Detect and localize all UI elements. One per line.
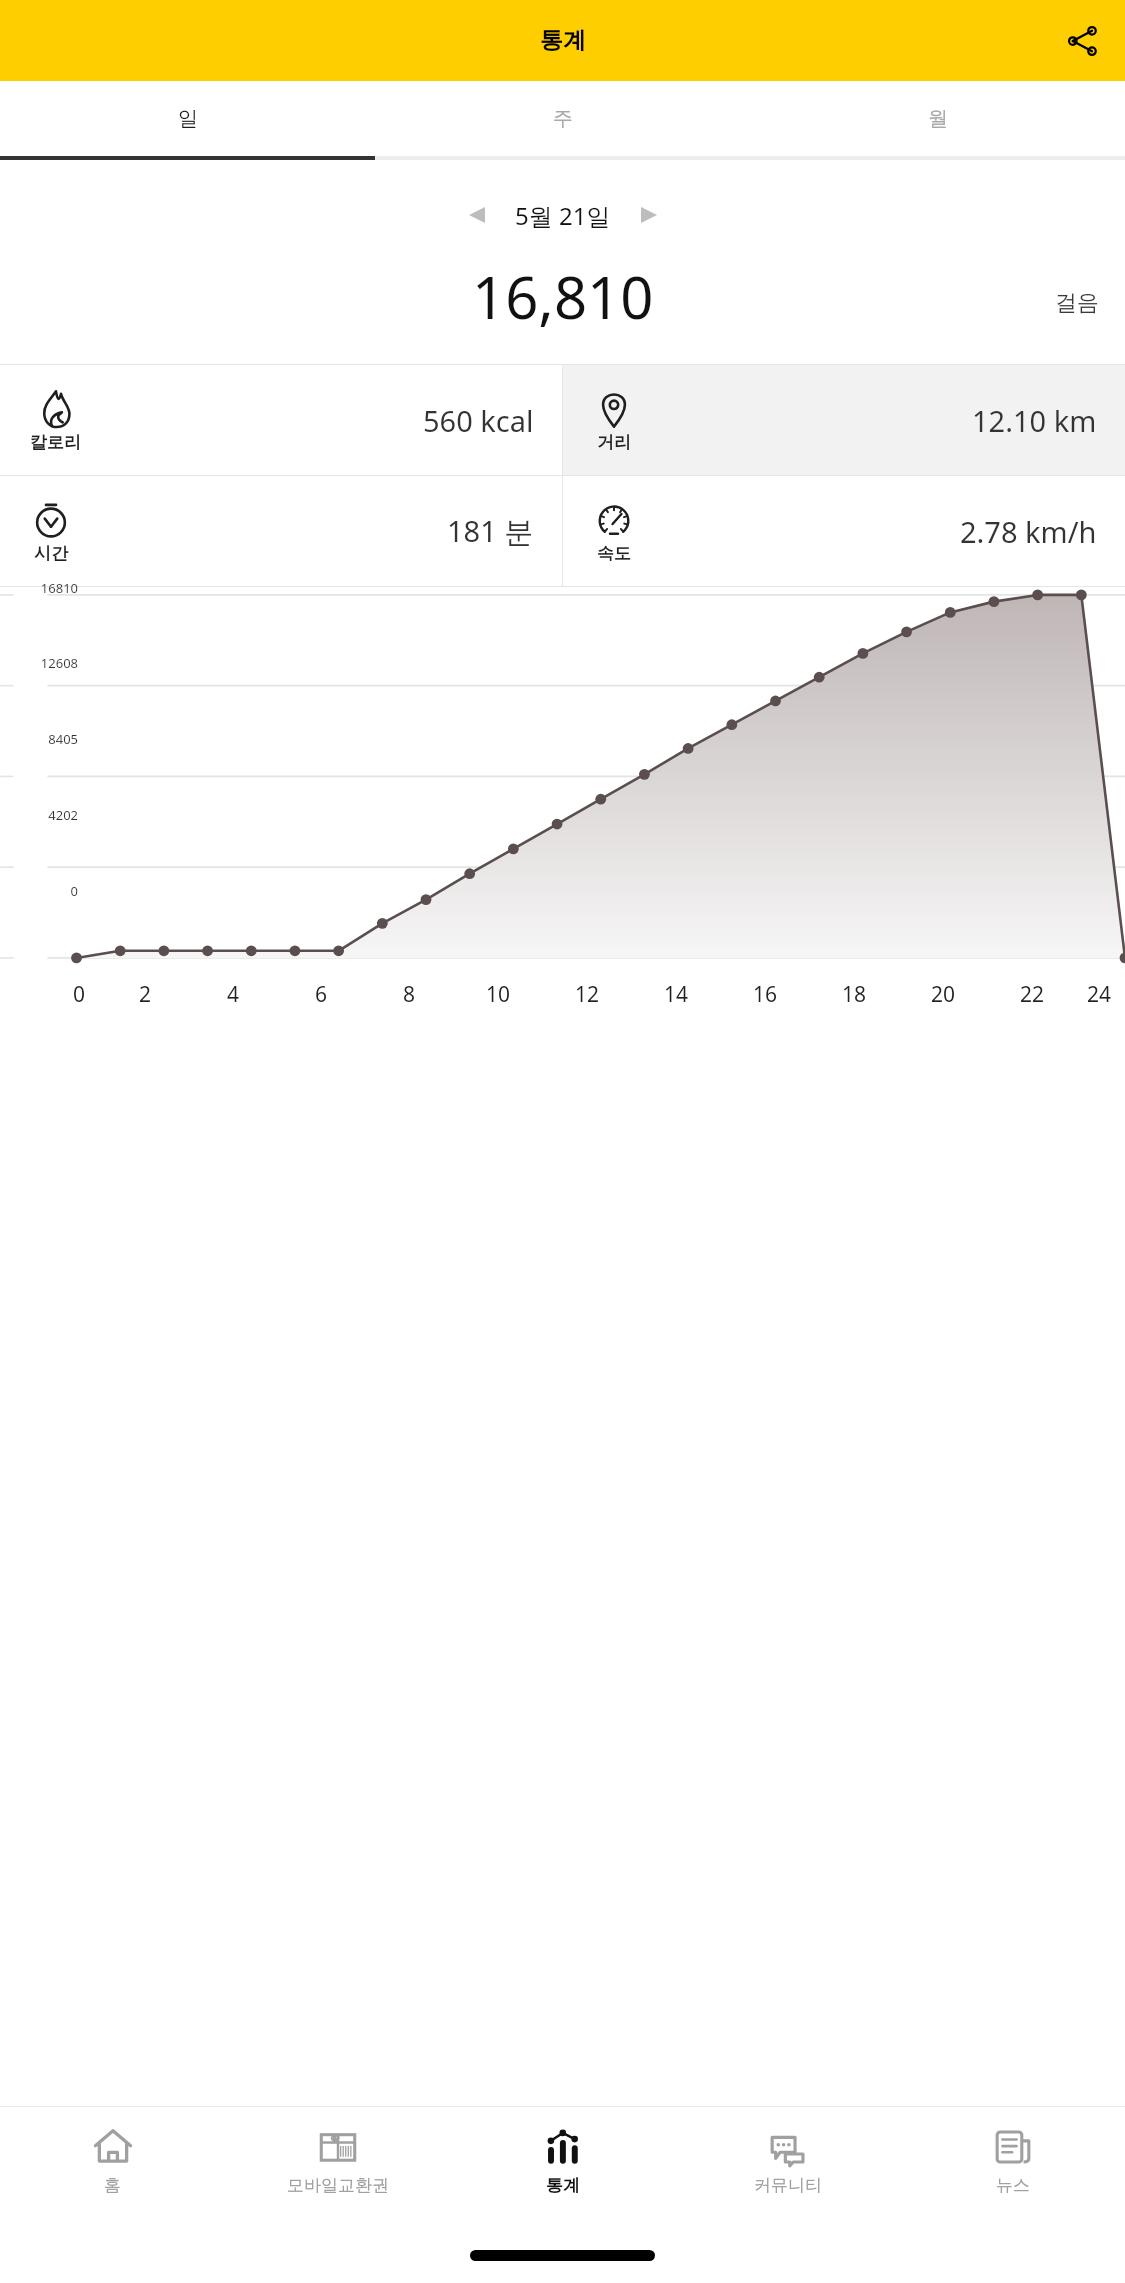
button[interactable]: 뉴스 bbox=[900, 2107, 1125, 2227]
button[interactable]: 주 bbox=[375, 81, 750, 156]
staticText: 시간 bbox=[34, 543, 68, 564]
button[interactable]: 모바일교환권 bbox=[225, 2107, 450, 2227]
staticText: 커뮤니티 bbox=[754, 2175, 822, 2196]
staticText: 6 bbox=[315, 980, 328, 1009]
staticText: 5월 21일 bbox=[515, 199, 611, 232]
button[interactable]: 월 bbox=[750, 81, 1125, 156]
button[interactable]: 거리 bbox=[563, 365, 1125, 475]
staticText: 4202 bbox=[48, 806, 78, 824]
button[interactable]: 커뮤니티 bbox=[675, 2107, 900, 2227]
staticText: 통계 bbox=[546, 2175, 580, 2196]
staticText: 181 분 bbox=[447, 511, 534, 551]
staticText: 12.10 km bbox=[972, 401, 1097, 440]
staticText: 2 bbox=[139, 980, 152, 1009]
staticText: 일 bbox=[178, 106, 198, 131]
button[interactable]: 시간 bbox=[0, 476, 562, 586]
staticText: 16,810 bbox=[472, 257, 654, 336]
staticText: 홈 bbox=[104, 2175, 121, 2196]
button[interactable]: Previous day bbox=[453, 191, 501, 239]
staticText: 22 bbox=[1020, 980, 1045, 1009]
staticText: 18 bbox=[842, 980, 867, 1009]
staticText: 칼로리 bbox=[30, 432, 81, 453]
staticText: 주 bbox=[553, 106, 573, 131]
staticText: 12608 bbox=[40, 654, 78, 672]
staticText: 월 bbox=[928, 106, 948, 131]
staticText: 8405 bbox=[48, 730, 78, 748]
staticText: 8 bbox=[403, 980, 416, 1009]
button[interactable]: 통계 bbox=[450, 2107, 675, 2227]
staticText: 0 bbox=[73, 980, 86, 1009]
button[interactable]: Share bbox=[1055, 13, 1111, 69]
staticText: 통계 bbox=[540, 26, 586, 55]
staticText: 속도 bbox=[597, 543, 631, 564]
staticText: 0 bbox=[70, 882, 78, 900]
staticText: 걸음 bbox=[1055, 289, 1099, 317]
staticText: 10 bbox=[486, 980, 511, 1009]
button[interactable]: 일 bbox=[0, 81, 375, 156]
button[interactable]: 칼로리 bbox=[0, 365, 562, 475]
staticText: 14 bbox=[664, 980, 689, 1009]
staticText: 모바일교환권 bbox=[287, 2175, 389, 2196]
button[interactable]: 홈 bbox=[0, 2107, 225, 2227]
button[interactable]: Next day bbox=[625, 191, 673, 239]
staticText: 4 bbox=[227, 980, 240, 1009]
staticText: 12 bbox=[575, 980, 600, 1009]
staticText: 24 bbox=[1087, 980, 1112, 1009]
staticText: 560 kcal bbox=[423, 401, 534, 440]
staticText: 20 bbox=[931, 980, 956, 1009]
staticText: 뉴스 bbox=[996, 2175, 1030, 2196]
button[interactable]: 속도 bbox=[563, 476, 1125, 586]
staticText: 16810 bbox=[40, 579, 78, 597]
staticText: 2.78 km/h bbox=[960, 512, 1097, 551]
staticText: 16 bbox=[753, 980, 778, 1009]
staticText: 거리 bbox=[597, 432, 631, 453]
